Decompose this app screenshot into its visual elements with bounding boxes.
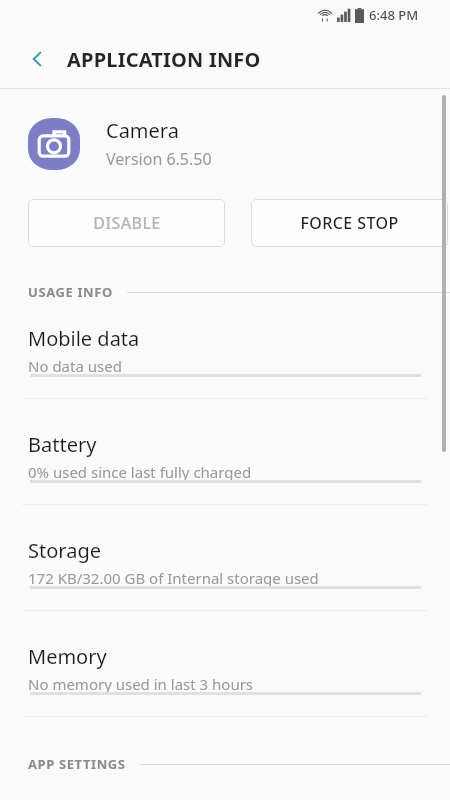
staticText: 6:48 PM <box>369 6 419 24</box>
button[interactable]: DISABLE <box>28 199 225 247</box>
button[interactable]: Mobile data <box>0 309 450 415</box>
staticText: 0% used since last fully charged <box>28 462 252 482</box>
button[interactable]: Storage <box>0 521 450 627</box>
staticText: APP SETTINGS <box>28 755 126 773</box>
button[interactable]: Battery <box>0 415 450 521</box>
staticText: Version 6.5.50 <box>106 148 212 170</box>
staticText: Memory <box>28 643 107 670</box>
staticText: No data used <box>28 356 122 376</box>
staticText: 172 KB/32.00 GB of Internal storage used <box>28 568 319 588</box>
button[interactable]: Memory <box>0 627 450 733</box>
staticText: Battery <box>28 431 97 458</box>
staticText: USAGE INFO <box>28 283 113 301</box>
staticText: Mobile data <box>28 325 140 352</box>
staticText: No memory used in last 3 hours <box>28 674 254 694</box>
staticText: DISABLE <box>93 212 161 234</box>
button[interactable]: FORCE STOP <box>251 199 448 247</box>
staticText: APPLICATION INFO <box>67 46 261 73</box>
staticText: FORCE STOP <box>300 212 399 234</box>
staticText: Storage <box>28 537 101 564</box>
staticText: Camera <box>106 117 179 144</box>
button[interactable]: Back <box>16 37 60 81</box>
